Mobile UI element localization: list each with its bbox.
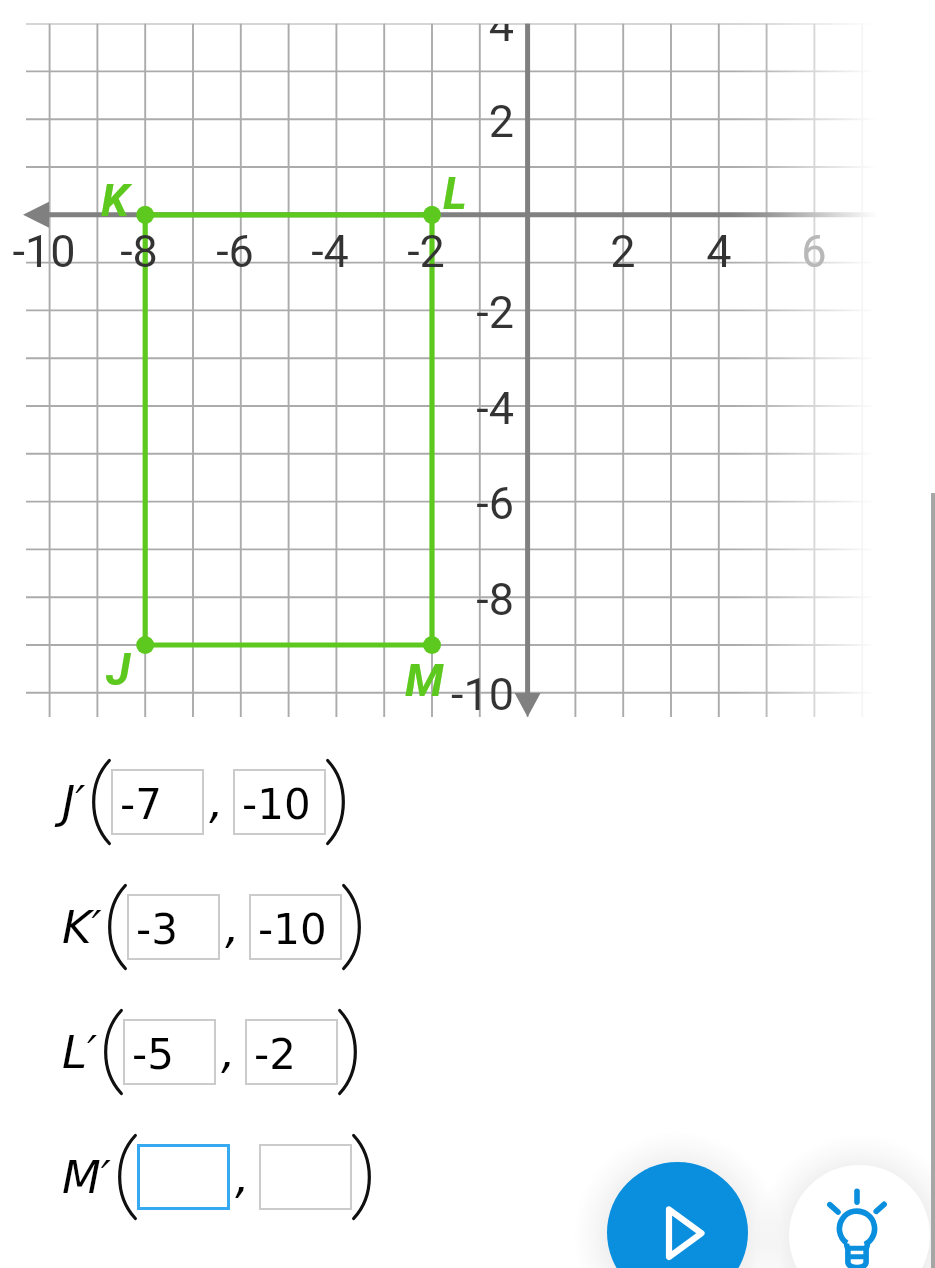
staticText: -4 <box>476 382 514 435</box>
button[interactable]: -2 <box>245 1019 338 1085</box>
staticText: , <box>235 1150 250 1204</box>
staticText: -2 <box>407 225 445 278</box>
staticText: -5 <box>132 1030 174 1079</box>
staticText: -2 <box>254 1030 296 1079</box>
staticText: J <box>106 643 131 696</box>
staticText: J′ <box>62 776 86 828</box>
staticText: L′ <box>62 1026 98 1078</box>
button[interactable]: -10 <box>249 894 342 960</box>
staticText: -10 <box>12 225 76 278</box>
button[interactable]: Coordinate plane graph <box>0 0 935 717</box>
staticText: -2 <box>476 286 514 339</box>
staticText: -6 <box>216 225 254 278</box>
button[interactable]: Play <box>607 1162 748 1268</box>
staticText: -8 <box>476 573 514 626</box>
staticText: 2 <box>488 95 514 148</box>
staticText: L <box>443 167 467 220</box>
staticText: -10 <box>450 668 514 718</box>
staticText: , <box>209 775 224 829</box>
staticText: 6 <box>801 225 827 278</box>
staticText: 4 <box>706 225 732 278</box>
button[interactable]: -10 <box>233 769 326 835</box>
button[interactable]: Hint <box>789 1165 930 1268</box>
button[interactable]: -3 <box>127 894 220 960</box>
staticText: , <box>221 1025 236 1079</box>
staticText: 2 <box>610 225 636 278</box>
staticText: -10 <box>242 780 311 829</box>
staticText: M <box>405 654 444 707</box>
staticText: -10 <box>258 905 327 954</box>
staticText: 4 <box>488 24 514 52</box>
staticText: K′ <box>62 901 102 953</box>
staticText: -7 <box>120 780 162 829</box>
staticText: -4 <box>311 225 349 278</box>
button[interactable]: -5 <box>123 1019 216 1085</box>
staticText: K <box>101 174 129 227</box>
staticText: M′ <box>62 1151 112 1203</box>
staticText: -8 <box>120 225 158 278</box>
button[interactable] <box>137 1144 230 1210</box>
staticText: , <box>225 900 240 954</box>
button[interactable] <box>259 1144 352 1210</box>
staticText: -6 <box>476 477 514 530</box>
button[interactable]: -7 <box>111 769 204 835</box>
staticText: -3 <box>136 905 178 954</box>
